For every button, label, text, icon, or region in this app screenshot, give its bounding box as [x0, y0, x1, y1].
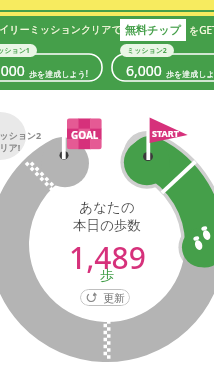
- staticText: 歩を達成しよう!: [29, 68, 88, 79]
- staticText: 歩を達成しよう!: [166, 68, 214, 79]
- staticText: 歩: [100, 267, 114, 285]
- button[interactable]: 無料チップ: [120, 19, 186, 41]
- staticText: 更新: [103, 291, 125, 305]
- staticText: ミッション2: [0, 129, 42, 141]
- button[interactable]: デイリーミッションクリアで: [0, 23, 122, 36]
- staticText: クリア!: [0, 141, 21, 153]
- button[interactable]: 更新: [80, 289, 130, 306]
- staticText: 3,000: [0, 61, 25, 80]
- staticText: START: [152, 127, 179, 139]
- staticText: GOAL: [71, 128, 99, 142]
- button[interactable]: ミッション1: [0, 44, 103, 82]
- staticText: 6,000: [126, 61, 162, 80]
- staticText: あなたの 本日の歩数: [73, 199, 141, 234]
- staticText: デイリーミッションクリアで: [0, 23, 122, 36]
- staticText: 1,489: [69, 237, 146, 278]
- staticText: ミッション2: [127, 46, 167, 56]
- staticText: ミッション1: [0, 46, 30, 56]
- staticText: 無料チップ: [125, 23, 181, 37]
- staticText: をGET: [189, 23, 214, 37]
- button[interactable]: ミッション2: [111, 44, 214, 82]
